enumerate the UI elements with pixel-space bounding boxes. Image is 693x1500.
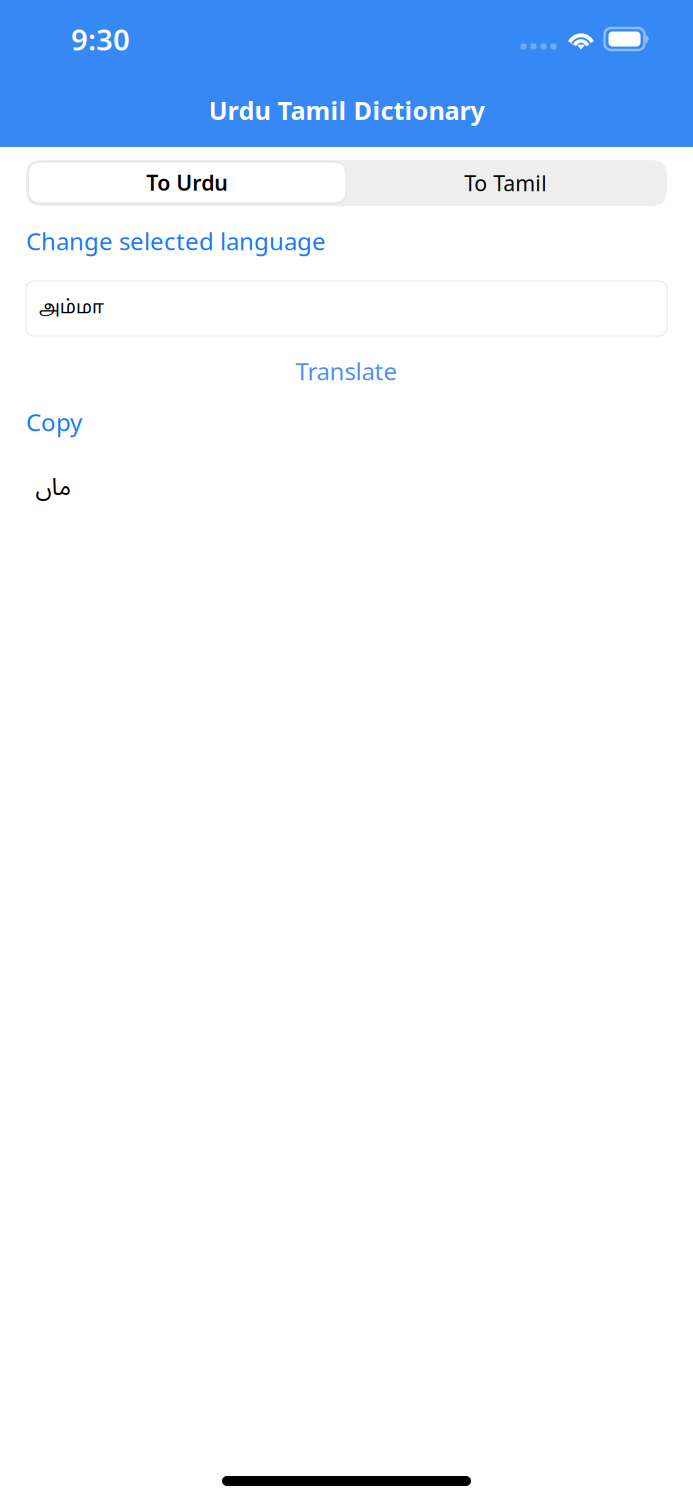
staticText: 9:30 [71,19,130,58]
staticText: To Urdu [146,168,228,197]
staticText: To Tamil [464,169,547,197]
staticText: Change selected language [26,225,326,257]
staticText: ماں [35,462,71,513]
button[interactable]: Translate [26,358,667,384]
staticText: Copy [26,406,82,438]
staticText: Urdu Tamil Dictionary [208,93,484,127]
button[interactable]: Change selected language [26,228,326,254]
button[interactable]: To Tamil [346,162,665,204]
staticText: அம்மா [39,297,104,320]
staticText: Translate [295,355,397,387]
button[interactable]: Copy [26,409,82,435]
button[interactable]: To Urdu [28,161,346,204]
